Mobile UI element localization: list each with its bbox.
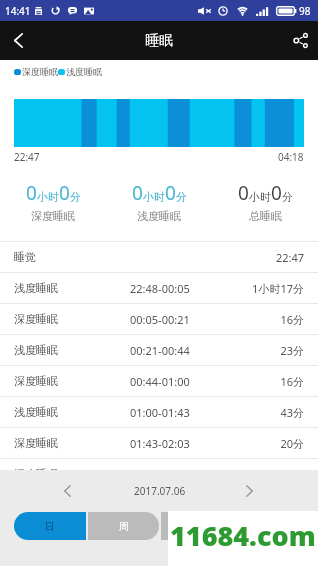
staticText: 小时 <box>37 190 59 204</box>
staticText: 深度睡眠 <box>14 374 130 388</box>
button[interactable]: 深度睡眠 <box>0 304 318 334</box>
staticText: 深度睡眠 <box>31 209 75 223</box>
button[interactable]: 周 <box>88 512 159 540</box>
staticText: 总睡眠 <box>249 209 282 223</box>
staticText: 22:47 <box>234 250 304 265</box>
button[interactable]: Next day <box>234 476 264 506</box>
staticText: 浅度睡眠 <box>137 209 181 223</box>
staticText: 深度睡眠 <box>14 436 130 450</box>
button[interactable]: 深度睡眠 <box>0 366 318 396</box>
staticText: 周 <box>119 520 129 533</box>
button[interactable]: Share <box>282 21 318 60</box>
staticText: 0 <box>271 180 282 206</box>
button[interactable]: 月 <box>161 512 221 540</box>
staticText: 分 <box>282 190 293 204</box>
staticText: 1小时17分 <box>234 281 304 296</box>
staticText: 小时 <box>143 190 165 204</box>
staticText: 浅度睡眠 <box>14 281 130 295</box>
staticText: 04:18 <box>278 150 304 164</box>
staticText: 02:03-02:21 <box>130 467 234 482</box>
staticText: 月 <box>186 520 196 533</box>
staticText: 11684.com <box>170 517 316 554</box>
staticText: 00:05-00:21 <box>130 312 234 327</box>
staticText: 小时 <box>249 190 271 204</box>
staticText: 浅度睡眠 <box>14 405 130 419</box>
staticText: 18分 <box>234 467 304 482</box>
staticText: 01:00-01:43 <box>130 405 234 420</box>
button[interactable]: 日 <box>14 512 86 540</box>
staticText: 00:44-01:00 <box>130 374 234 389</box>
staticText: 浅度睡眠 <box>14 343 130 357</box>
staticText: 浅度睡眠 <box>66 66 102 77</box>
staticText: 16分 <box>234 312 304 327</box>
button[interactable]: 深度睡眠 <box>0 459 318 489</box>
staticText: 14:41 <box>5 4 31 18</box>
staticText: 深度睡眠 <box>22 66 58 77</box>
staticText: 分 <box>176 190 187 204</box>
staticText: 深度睡眠 <box>14 312 130 326</box>
staticText: 0 <box>26 180 37 206</box>
staticText: 0 <box>59 180 70 206</box>
staticText: 深度睡眠 <box>14 467 130 481</box>
staticText: 00:21-00:44 <box>130 343 234 358</box>
staticText: 16分 <box>234 374 304 389</box>
button[interactable]: 浅度睡眠 <box>0 335 318 365</box>
button[interactable]: Previous day <box>52 476 82 506</box>
button[interactable]: 深度睡眠 <box>0 428 318 458</box>
button[interactable]: 浅度睡眠 <box>0 273 318 303</box>
staticText: 22:47 <box>14 150 40 164</box>
staticText: 01:43-02:03 <box>130 436 234 451</box>
button[interactable]: 睡觉 <box>0 242 318 272</box>
staticText: 睡眠 <box>145 32 173 50</box>
staticText: 0 <box>165 180 176 206</box>
button[interactable]: Back <box>0 21 36 60</box>
staticText: 睡觉 <box>14 250 130 264</box>
staticText: 日 <box>45 520 55 533</box>
staticText: 20分 <box>234 436 304 451</box>
staticText: 23分 <box>234 343 304 358</box>
staticText: 0 <box>238 180 249 206</box>
staticText: 0 <box>132 180 143 206</box>
staticText: 22:48-00:05 <box>130 281 234 296</box>
button[interactable]: 浅度睡眠 <box>0 397 318 427</box>
staticText: 分 <box>70 190 81 204</box>
staticText: 43分 <box>234 405 304 420</box>
staticText: 2017.07.06 <box>134 484 186 498</box>
staticText: 98 <box>299 4 311 18</box>
